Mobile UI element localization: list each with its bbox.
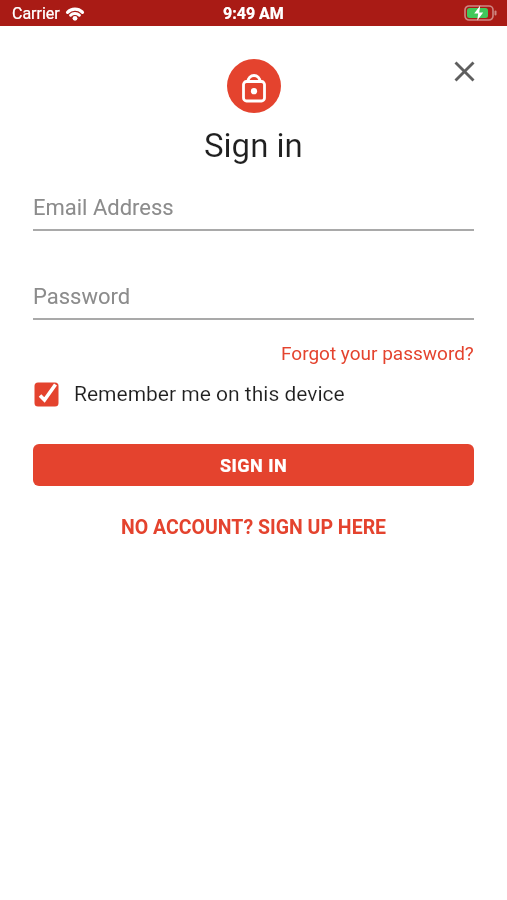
staticText: SIGN IN [220, 455, 288, 476]
staticText: Remember me on this device [74, 382, 345, 407]
staticText: NO ACCOUNT? SIGN UP HERE [121, 516, 387, 539]
button[interactable]: Forgot your password? [281, 342, 474, 364]
button[interactable]: Password [33, 284, 474, 320]
staticText: 9:49 AM [223, 4, 284, 23]
button[interactable] [227, 59, 281, 113]
button[interactable]: Email Address [33, 195, 474, 231]
button[interactable]: SIGN IN [33, 444, 474, 486]
staticText: Forgot your password? [281, 342, 474, 364]
staticText: Carrier [12, 4, 60, 23]
button[interactable]: NO ACCOUNT? SIGN UP HERE [121, 516, 387, 539]
staticText: Email Address [33, 195, 174, 221]
button[interactable] [446, 53, 482, 89]
button[interactable]: Remember me on this device [34, 382, 474, 407]
staticText: Password [33, 284, 131, 310]
staticText: Sign in [204, 126, 303, 165]
